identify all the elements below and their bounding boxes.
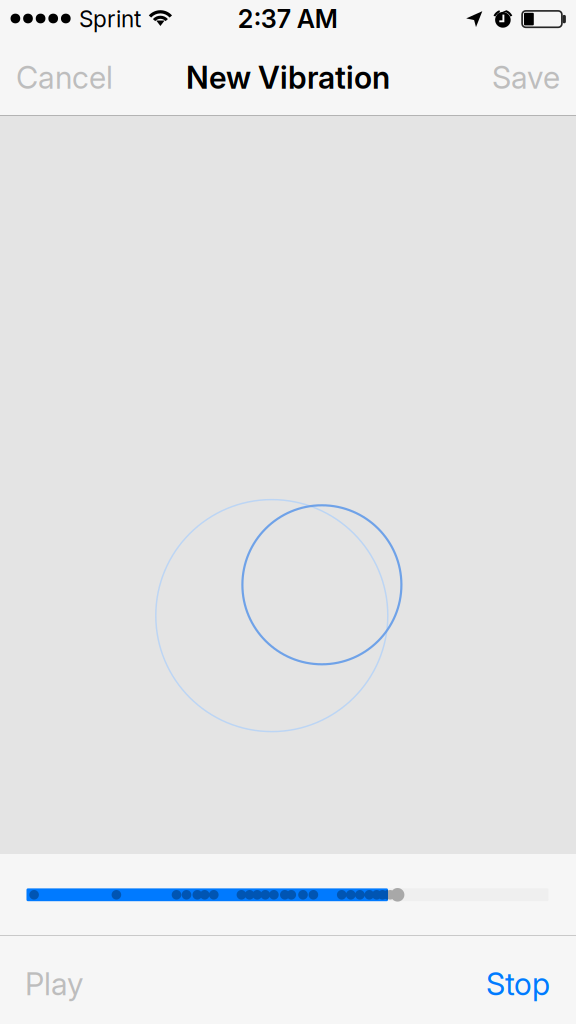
staticText: Cancel [16, 59, 113, 96]
staticText: Play [25, 965, 83, 1002]
staticText: Save [492, 59, 560, 96]
button[interactable]: Stop [464, 936, 576, 1024]
staticText: New Vibration [186, 59, 390, 96]
button[interactable]: Play [0, 936, 105, 1024]
staticText: 2:37 AM [238, 3, 338, 34]
staticText: Sprint [79, 5, 141, 33]
staticText: Stop [486, 965, 550, 1002]
button[interactable]: Save [478, 40, 576, 114]
button[interactable]: Cancel [0, 40, 127, 114]
